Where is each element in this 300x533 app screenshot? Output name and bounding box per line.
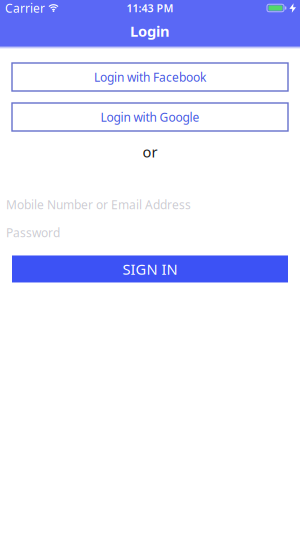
button[interactable]: Login with Facebook [0,63,300,91]
staticText: SIGN IN [122,259,177,279]
button[interactable]: Password [0,218,300,246]
staticText: Login with Facebook [94,69,206,85]
staticText: Password [6,224,60,240]
staticText: Login with Google [100,109,199,125]
button[interactable]: Mobile Number or Email Address [0,190,300,218]
button[interactable]: SIGN IN [0,255,300,282]
staticText: Mobile Number or Email Address [6,196,191,212]
staticText: or [142,142,157,161]
staticText: Login [130,21,170,41]
staticText: Carrier [5,0,45,16]
button[interactable]: Login with Google [0,103,300,131]
staticText: 11:43 PM [126,1,173,15]
